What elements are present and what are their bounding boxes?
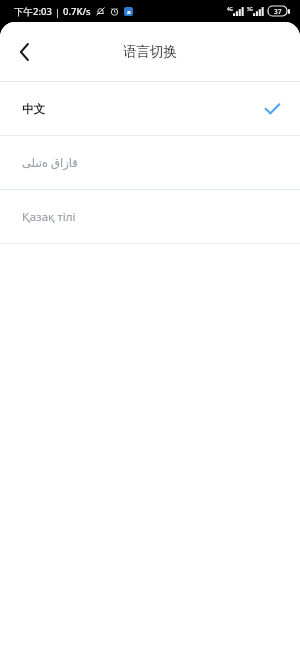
staticText: 0.7K/s — [63, 5, 91, 18]
staticText: 语言切换 — [123, 43, 177, 60]
staticText: قازاق ەتىلى — [22, 155, 280, 171]
button[interactable]: 中文 — [0, 82, 300, 135]
staticText: Қазақ тілі — [22, 209, 280, 225]
staticText: 37 — [274, 7, 282, 16]
staticText: | — [55, 6, 60, 18]
staticText: 4G — [227, 6, 233, 12]
button[interactable]: Back — [6, 34, 42, 70]
staticText: 5G — [247, 6, 253, 12]
staticText: 中文 — [22, 102, 265, 116]
button[interactable]: Қазақ тілі — [0, 190, 300, 243]
staticText: 下午2:03 — [14, 5, 52, 18]
staticText: a — [127, 8, 131, 16]
button[interactable]: قازاق ەتىلى — [0, 136, 300, 189]
